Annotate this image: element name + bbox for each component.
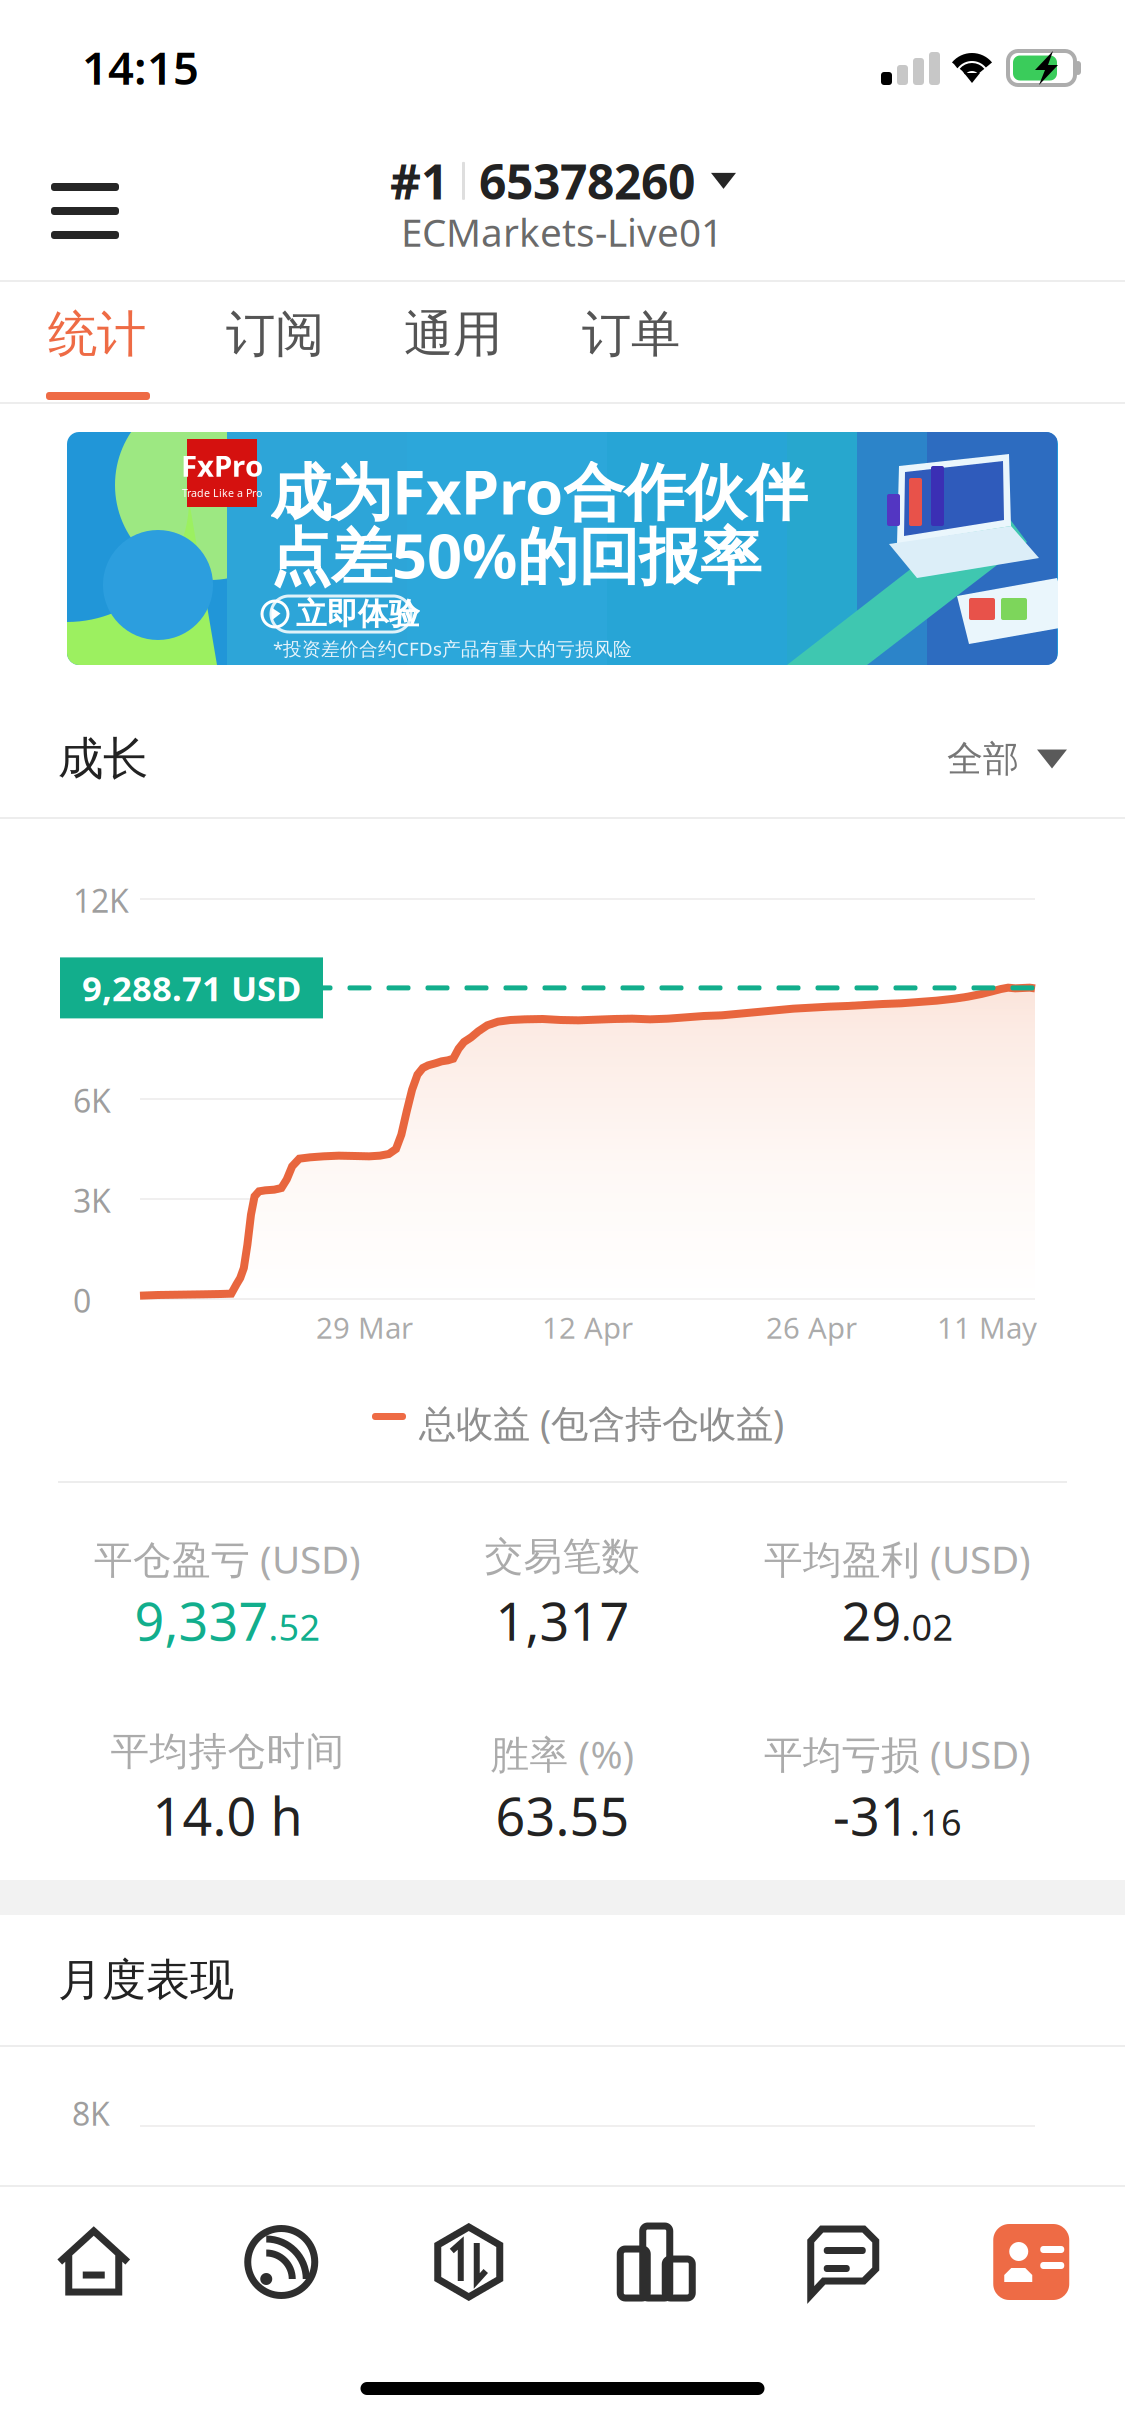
staticText: #1 <box>390 149 448 213</box>
staticText: 9,288.71 USD <box>82 965 301 1011</box>
staticText: 3K <box>73 1179 111 1221</box>
staticText: 12 Apr <box>542 1308 633 1347</box>
staticText: 平均持仓时间 <box>110 1728 344 1775</box>
button[interactable]: Signals <box>187 2187 375 2337</box>
staticText: 全部 <box>947 737 1019 781</box>
staticText: 总收益 (包含持仓收益) <box>419 1398 784 1448</box>
staticText: -31 <box>833 1781 910 1850</box>
staticText: 订阅 <box>226 304 324 365</box>
staticText: .02 <box>901 1603 953 1651</box>
button[interactable]: Menu <box>25 156 145 266</box>
staticText: 交易笔数 <box>484 1533 640 1580</box>
staticText: 8K <box>72 2092 110 2134</box>
button[interactable]: 全部 <box>947 737 1067 781</box>
staticText: *投资差价合约CFDs产品有重大的亏损风险 <box>273 636 632 661</box>
staticText: 29 Mar <box>316 1308 413 1347</box>
button[interactable]: 通用 <box>402 282 580 402</box>
staticText: 6K <box>73 1079 111 1121</box>
button[interactable]: FxPro promotion banner <box>0 432 1125 665</box>
button[interactable]: 订阅 <box>224 282 402 402</box>
staticText: 11 May <box>937 1308 1037 1347</box>
button[interactable]: Trade <box>375 2187 562 2337</box>
staticText: 1,317 <box>495 1586 629 1655</box>
staticText: 29 <box>841 1586 901 1655</box>
staticText: 平均亏损 (USD) <box>764 1728 1031 1779</box>
staticText: 平均盈利 (USD) <box>764 1533 1031 1584</box>
staticText: 9,337 <box>134 1586 268 1655</box>
staticText: Trade Like a Pro <box>182 486 262 500</box>
button[interactable]: Home <box>0 2187 187 2337</box>
staticText: ECMarkets-Live01 <box>401 206 723 257</box>
staticText: 订单 <box>582 304 680 365</box>
staticText: .16 <box>910 1798 962 1846</box>
button[interactable]: 统计 <box>46 282 224 402</box>
staticText: 成长 <box>58 731 148 787</box>
staticText: 0 <box>73 1279 91 1321</box>
staticText: 14:15 <box>82 37 199 97</box>
staticText: 点差50%的回报率 <box>270 514 761 595</box>
staticText: 26 Apr <box>766 1308 857 1347</box>
button[interactable]: #1 <box>390 123 810 253</box>
staticText: 12K <box>73 879 129 921</box>
staticText: 成为FxPro合作伙伴 <box>270 450 807 531</box>
staticText: 平仓盈亏 (USD) <box>94 1533 361 1584</box>
staticText: 月度表现 <box>58 1953 234 2007</box>
staticText: 立即体验 <box>296 595 420 633</box>
staticText: .52 <box>268 1603 320 1651</box>
staticText: 统计 <box>48 304 146 365</box>
button[interactable]: Profile <box>937 2187 1125 2337</box>
staticText: 14.0 h <box>152 1781 302 1850</box>
button[interactable]: Messages <box>750 2187 937 2337</box>
staticText: FxPro <box>181 446 263 485</box>
button[interactable]: 订单 <box>580 282 758 402</box>
button[interactable]: Statistics <box>562 2187 750 2337</box>
staticText: 胜率 (%) <box>490 1728 634 1779</box>
staticText: 65378260 <box>479 149 695 213</box>
staticText: 通用 <box>404 304 502 365</box>
staticText: 63.55 <box>495 1781 629 1850</box>
